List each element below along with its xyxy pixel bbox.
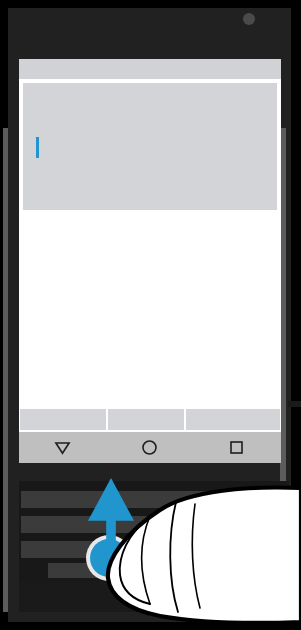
button[interactable] (23, 83, 277, 210)
button[interactable]: Back (19, 432, 106, 463)
button[interactable]: Recents (193, 432, 280, 463)
button[interactable] (21, 491, 279, 508)
button[interactable] (21, 516, 279, 533)
button[interactable]: Home (106, 432, 193, 463)
button[interactable]: Drag handle (86, 535, 132, 581)
button[interactable] (21, 541, 279, 558)
button[interactable] (48, 563, 108, 578)
other: Volume button (3, 128, 10, 612)
